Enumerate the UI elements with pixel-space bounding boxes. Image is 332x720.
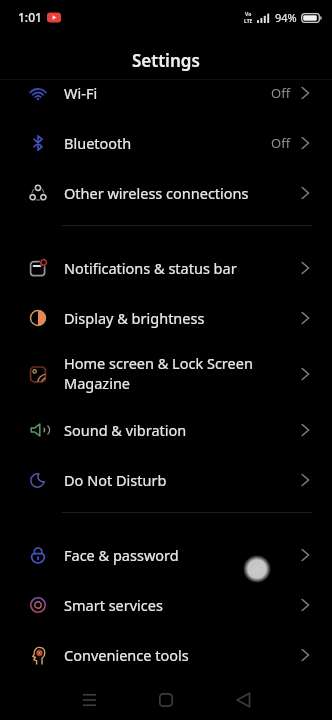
button[interactable]: Do Not Disturb — [0, 455, 332, 505]
button[interactable]: Convenience tools — [0, 630, 332, 680]
button[interactable] — [215, 680, 271, 720]
staticText: Other wireless connections — [64, 183, 291, 203]
staticText: Settings — [132, 49, 200, 72]
staticText: Convenience tools — [64, 645, 291, 665]
staticText: Notifications & status bar — [64, 258, 291, 278]
button[interactable]: Smart services — [0, 580, 332, 630]
button[interactable] — [138, 680, 194, 720]
button[interactable]: Other wireless connections — [0, 168, 332, 218]
staticText: Vo — [245, 11, 252, 18]
staticText: Display & brightness — [64, 308, 291, 328]
button[interactable]: Face & password — [0, 530, 332, 580]
staticText: 1:01 — [18, 9, 42, 25]
staticText: Face & password — [64, 545, 291, 565]
staticText: Home screen & Lock Screen Magazine — [64, 353, 291, 394]
button[interactable] — [61, 680, 117, 720]
button[interactable]: Notifications & status bar — [0, 243, 332, 293]
button[interactable]: Bluetooth — [0, 118, 332, 168]
staticText: LTE — [244, 18, 253, 25]
button[interactable]: Display & brightness — [0, 293, 332, 343]
button[interactable]: Sound & vibration — [0, 404, 332, 455]
staticText: Wi-Fi — [64, 83, 271, 103]
staticText: Off — [271, 134, 291, 152]
staticText: Sound & vibration — [64, 420, 291, 440]
staticText: Off — [271, 84, 291, 102]
staticText: Bluetooth — [64, 133, 271, 153]
button[interactable]: Home screen & Lock Screen Magazine — [0, 343, 332, 404]
staticText: Do Not Disturb — [64, 470, 291, 490]
staticText: 94% — [275, 10, 297, 25]
staticText: Smart services — [64, 595, 291, 615]
button[interactable]: Wi-Fi — [0, 68, 332, 118]
